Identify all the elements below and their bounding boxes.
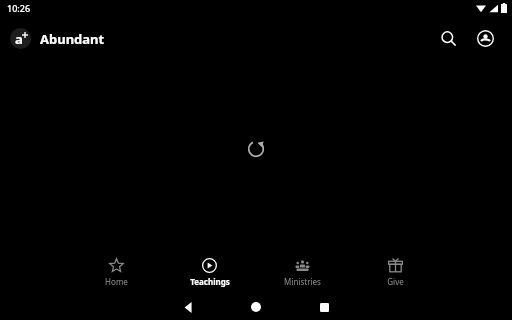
staticText: Home: [105, 276, 128, 287]
button[interactable]: Give: [349, 255, 442, 290]
button[interactable]: Ministries: [256, 255, 349, 290]
staticText: 10:26: [7, 2, 31, 14]
staticText: Ministries: [284, 276, 321, 287]
staticText: a: [15, 30, 23, 48]
button[interactable]: Account: [468, 21, 502, 55]
button[interactable]: Home: [222, 294, 290, 320]
button[interactable]: Home: [70, 255, 163, 290]
button[interactable]: Back: [154, 294, 222, 320]
staticText: Give: [387, 276, 404, 287]
button[interactable]: a: [10, 28, 105, 49]
button[interactable]: Search: [431, 21, 465, 55]
button[interactable]: Recents: [290, 294, 358, 320]
staticText: Abundant: [40, 30, 105, 48]
staticText: Teachings: [190, 276, 230, 287]
button[interactable]: Teachings: [163, 255, 256, 290]
